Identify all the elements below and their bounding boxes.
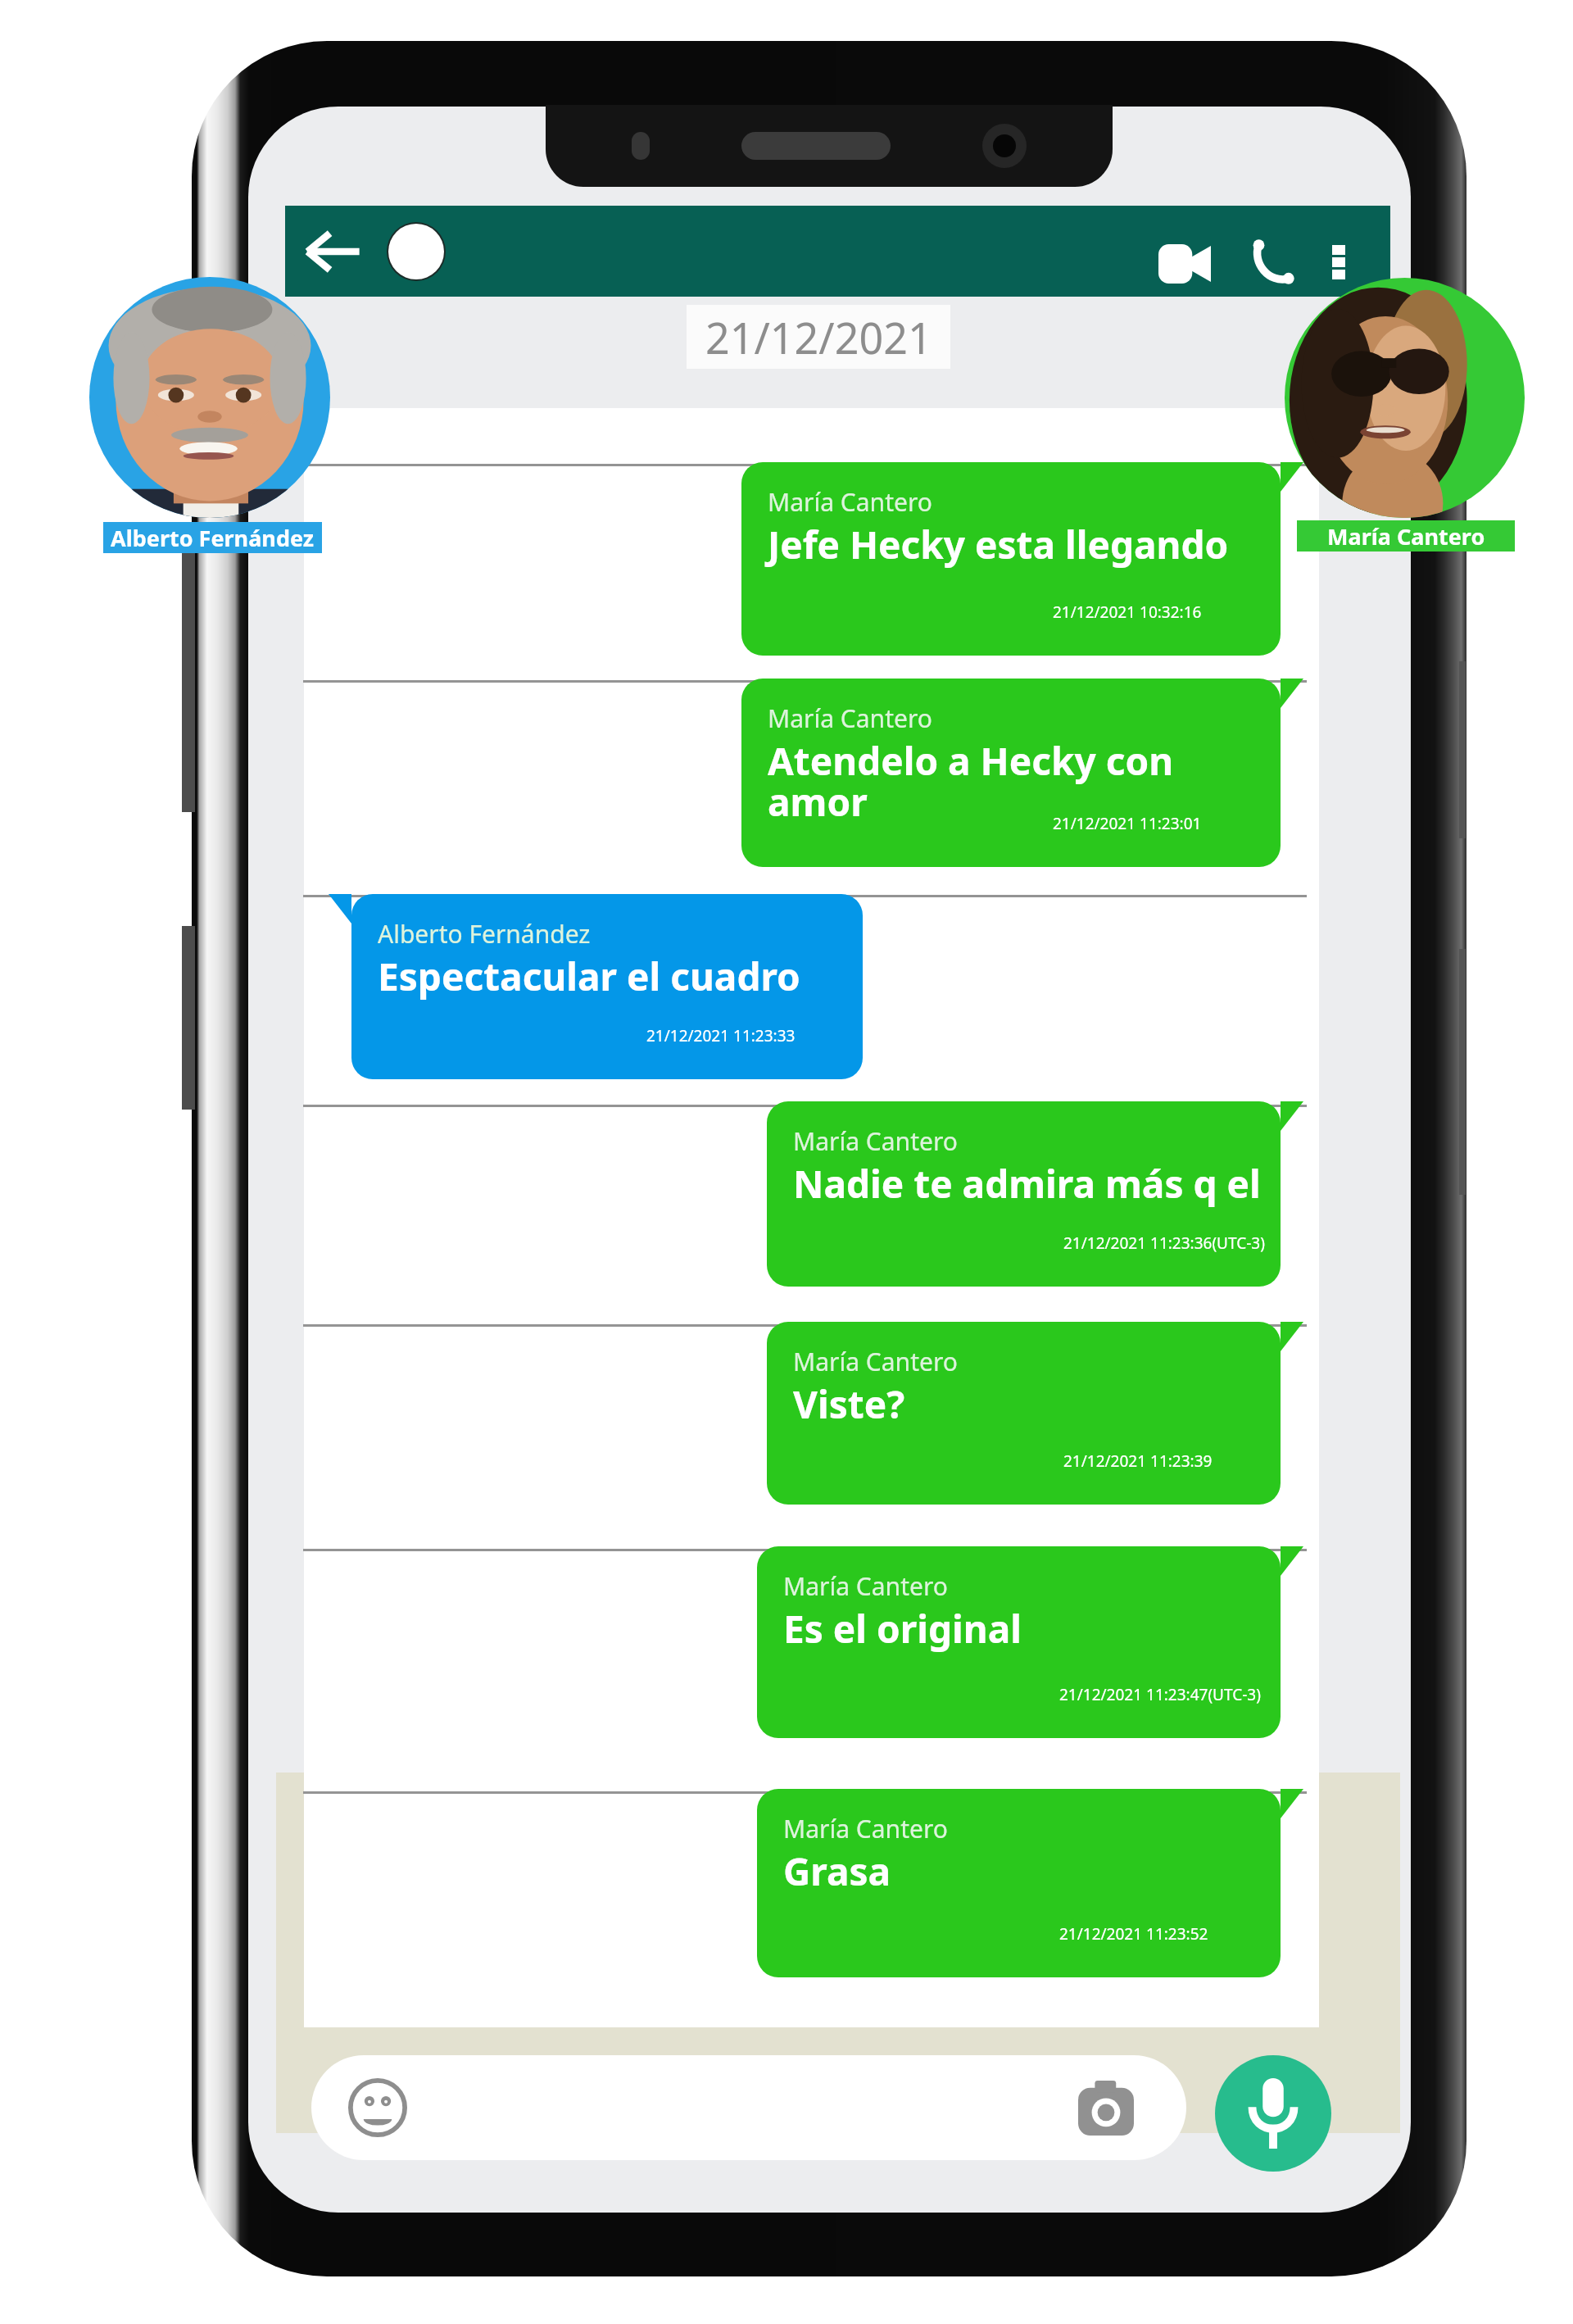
button[interactable]: Emoji: [311, 2055, 1186, 2160]
staticText: 21/12/2021: [705, 308, 932, 366]
button[interactable]: María Cantero: [1297, 520, 1515, 551]
staticText: María Cantero: [1327, 521, 1485, 551]
button[interactable]: Voice call: [1252, 228, 1295, 298]
staticText: María Cantero: [793, 1345, 958, 1378]
staticText: 21/12/2021 11:23:47(UTC-3): [1059, 1684, 1261, 1705]
staticText: Espectacular el cuadro: [378, 951, 800, 1002]
button[interactable]: Profile picture: [387, 222, 446, 281]
button[interactable]: More options: [1332, 227, 1345, 297]
staticText: María Cantero: [768, 485, 932, 519]
button[interactable]: María Cantero: [767, 1322, 1303, 1505]
staticText: 21/12/2021 11:23:01: [1053, 813, 1202, 834]
button[interactable]: María Cantero: [741, 462, 1303, 656]
staticText: María Cantero: [768, 701, 932, 735]
button[interactable]: Record voice message: [1215, 2055, 1331, 2172]
button[interactable]: Alberto Fernández: [329, 894, 863, 1079]
staticText: Nadie te admira más q el: [793, 1158, 1261, 1210]
staticText: Atendelo a Hecky con amor: [768, 735, 1174, 828]
staticText: 21/12/2021 11:23:33: [646, 1025, 796, 1046]
button[interactable]: Video call: [1158, 229, 1211, 299]
staticText: Viste?: [793, 1378, 905, 1430]
staticText: María Cantero: [793, 1124, 958, 1158]
button[interactable]: Alberto Fernández profile photo: [89, 277, 330, 518]
staticText: 21/12/2021 11:23:36(UTC-3): [1063, 1232, 1265, 1254]
staticText: 21/12/2021 11:23:39: [1063, 1450, 1213, 1472]
button[interactable]: María Cantero: [757, 1546, 1303, 1738]
button[interactable]: María Cantero profile photo: [1285, 278, 1525, 518]
button[interactable]: Camera: [1065, 2067, 1147, 2149]
button[interactable]: Back: [300, 219, 365, 284]
staticText: Jefe Hecky esta llegando: [768, 519, 1229, 570]
button[interactable]: 21/12/2021: [687, 305, 950, 369]
staticText: Alberto Fernández: [111, 523, 315, 553]
staticText: 21/12/2021 11:23:52: [1059, 1923, 1208, 1945]
staticText: Es el original: [783, 1603, 1022, 1654]
button[interactable]: María Cantero: [767, 1101, 1303, 1287]
staticText: Alberto Fernández: [378, 917, 591, 951]
button[interactable]: Alberto Fernández: [103, 522, 322, 553]
button[interactable]: María Cantero: [741, 679, 1303, 867]
staticText: María Cantero: [783, 1812, 948, 1845]
button[interactable]: Emoji: [337, 2067, 419, 2149]
button[interactable]: María Cantero: [757, 1789, 1303, 1977]
staticText: María Cantero: [783, 1569, 948, 1603]
staticText: 21/12/2021 10:32:16: [1053, 601, 1202, 623]
staticText: Grasa: [783, 1845, 891, 1897]
